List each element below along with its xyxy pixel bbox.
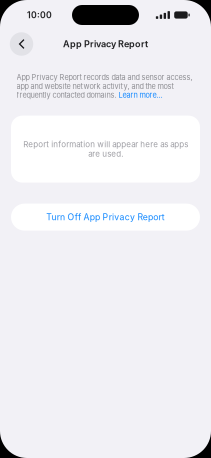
staticText: App Privacy Report (63, 38, 148, 49)
button[interactable]: Back (8, 31, 35, 57)
button[interactable]: Turn Off App Privacy Report (11, 204, 200, 231)
staticText: App Privacy Report records data and sens… (16, 73, 192, 100)
staticText: Turn Off App Privacy Report (46, 212, 165, 222)
staticText: 10:00 (27, 10, 52, 20)
staticText: Report information will appear here as a… (23, 139, 188, 159)
